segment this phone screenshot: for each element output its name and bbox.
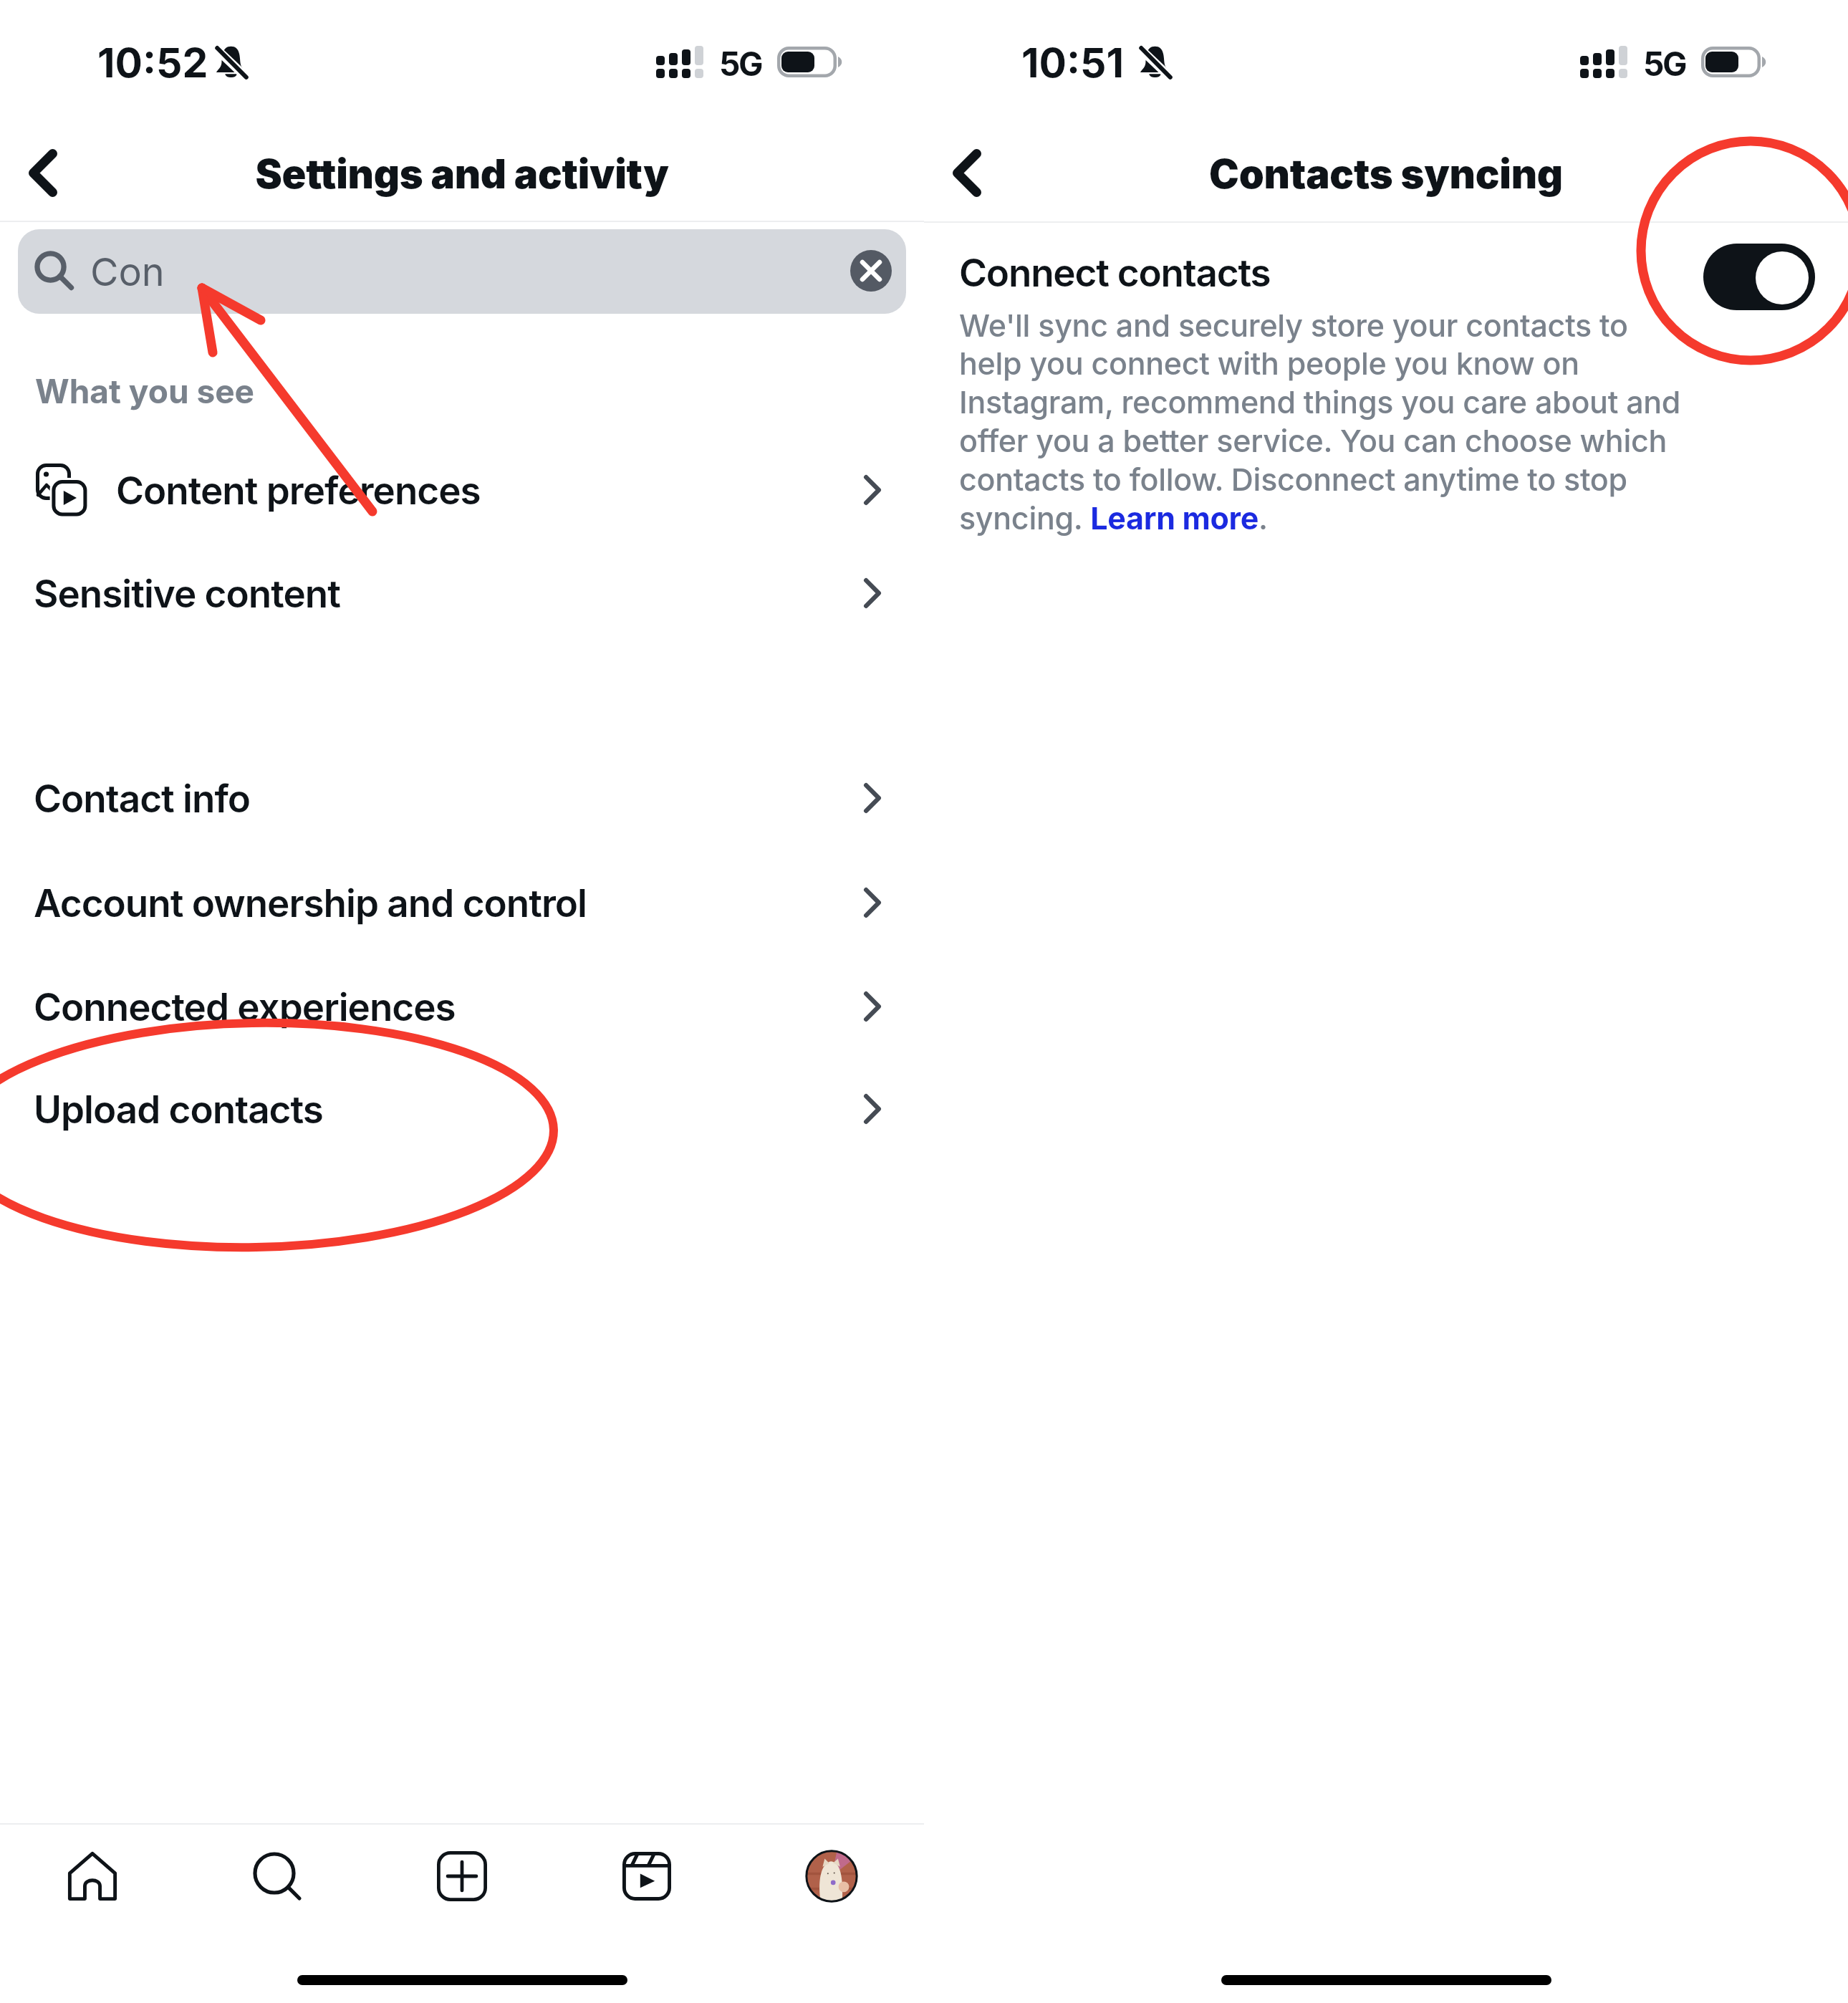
button[interactable]: Sensitive content: [0, 546, 924, 640]
staticText: 5G: [719, 44, 761, 84]
staticText: Contacts syncing: [924, 150, 1848, 198]
button[interactable]: Home: [0, 1828, 185, 1926]
button[interactable]: Profile: [739, 1828, 924, 1926]
staticText: Upload contacts: [34, 1087, 323, 1133]
button[interactable]: Reels: [554, 1828, 739, 1926]
staticText: Connected experiences: [34, 984, 456, 1030]
staticText: Contact info: [34, 776, 250, 822]
staticText: Content preferences: [116, 468, 481, 514]
button[interactable]: Upload contacts: [0, 1062, 924, 1156]
button[interactable]: Connect contacts toggle, on: [1703, 244, 1815, 310]
staticText: Settings and activity: [0, 150, 924, 198]
staticText: 5G: [1643, 44, 1685, 84]
button[interactable]: Contact info: [0, 751, 924, 845]
staticText: Con: [90, 249, 165, 295]
button[interactable]: Account ownership and control: [0, 855, 924, 950]
staticText: What you see: [35, 371, 254, 411]
button[interactable]: Content preferences: [0, 443, 924, 537]
button[interactable]: Clear search: [850, 250, 892, 292]
button[interactable]: Back: [924, 123, 1010, 223]
staticText: Connect contacts: [959, 250, 1271, 296]
button[interactable]: Search: [185, 1828, 370, 1926]
button[interactable]: Connected experiences: [0, 959, 924, 1054]
button[interactable]: Con: [18, 229, 906, 314]
staticText: Account ownership and control: [34, 880, 587, 926]
button[interactable]: Create: [370, 1828, 554, 1926]
staticText: 10:51: [1021, 38, 1125, 87]
staticText: Sensitive content: [34, 571, 340, 617]
button[interactable]: Back: [0, 123, 86, 223]
staticText: 10:52: [97, 38, 208, 87]
staticText: We'll sync and securely store your conta…: [959, 307, 1693, 537]
